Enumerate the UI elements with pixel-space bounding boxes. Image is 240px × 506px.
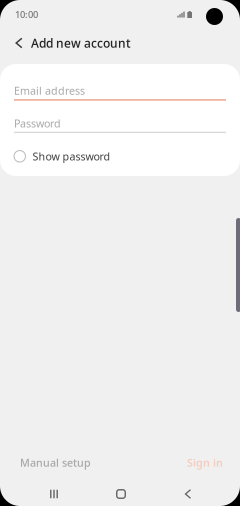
staticText: Manual setup <box>20 455 91 470</box>
button[interactable]: Home <box>101 482 141 506</box>
staticText: Sign in <box>187 455 223 470</box>
staticText: Email address <box>14 83 85 98</box>
button[interactable]: Recent apps <box>34 482 74 506</box>
staticText: Show password <box>32 149 110 163</box>
staticText: Add new account <box>31 35 131 51</box>
button[interactable]: Back <box>11 29 27 57</box>
button[interactable]: Sign in <box>175 449 240 476</box>
button[interactable]: Show password <box>14 150 226 163</box>
button[interactable]: Back <box>168 482 208 506</box>
staticText: 10:00 <box>15 8 38 21</box>
staticText: Password <box>14 116 61 130</box>
button[interactable]: Manual setup <box>0 449 103 476</box>
